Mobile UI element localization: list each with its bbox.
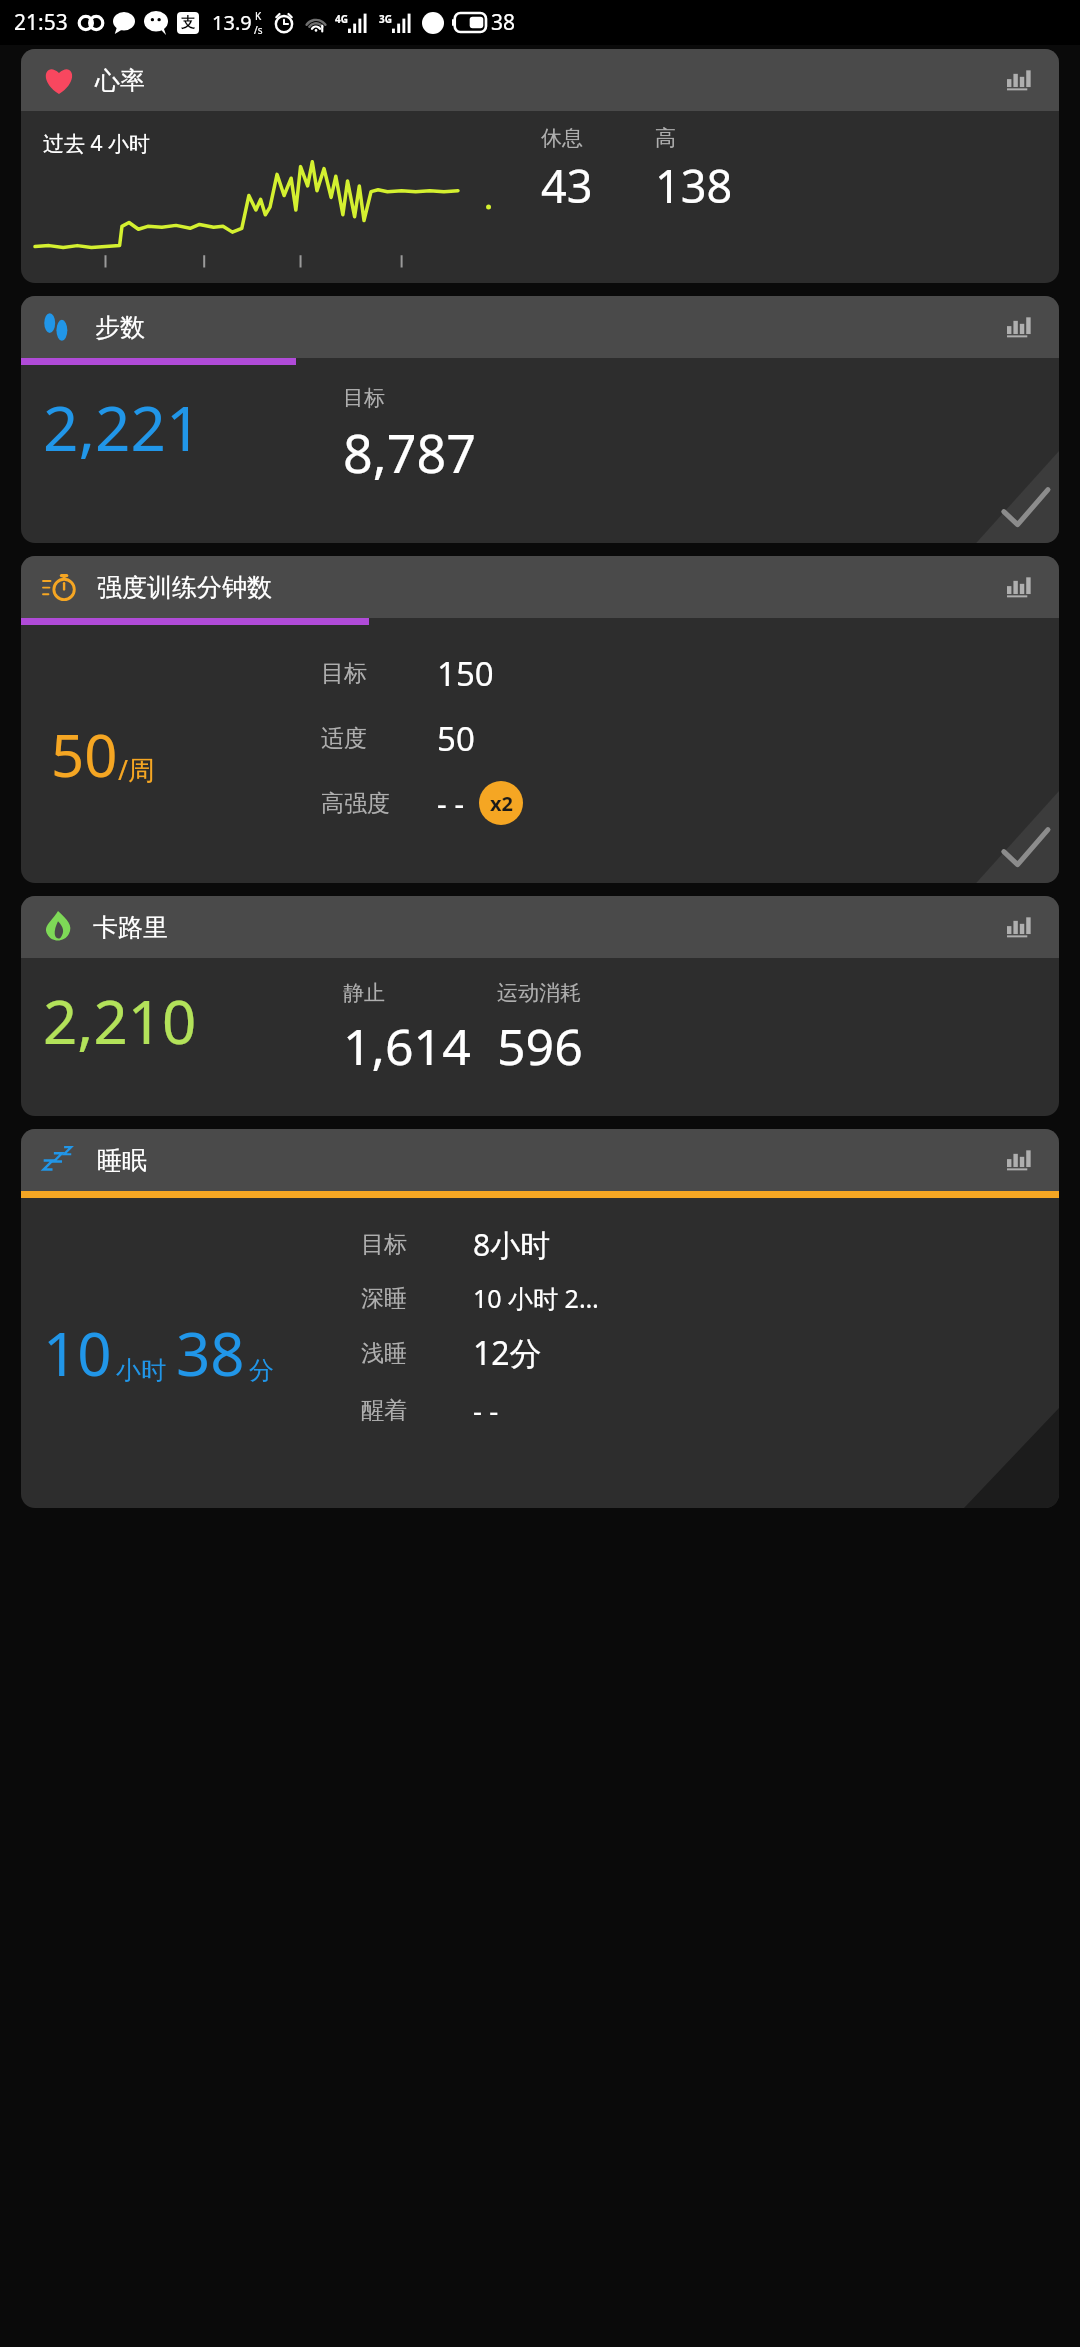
staticText: 强度训练分钟数 bbox=[97, 572, 272, 603]
button[interactable]: Chart bbox=[1003, 570, 1037, 604]
staticText: - - bbox=[437, 783, 465, 824]
staticText: 小时 bbox=[116, 1355, 166, 1386]
staticText: /周 bbox=[118, 751, 156, 788]
button[interactable]: 睡眠 bbox=[21, 1129, 1059, 1508]
button[interactable]: Chart bbox=[1003, 310, 1037, 344]
staticText: 138 bbox=[655, 155, 733, 216]
staticText: 10 bbox=[43, 1312, 112, 1394]
staticText: 目标 bbox=[321, 659, 367, 688]
button[interactable]: Chart bbox=[1003, 63, 1037, 97]
staticText: 1,614 bbox=[343, 1012, 471, 1080]
button[interactable]: Chart bbox=[1003, 1143, 1037, 1177]
button[interactable]: Chart bbox=[1003, 910, 1037, 944]
staticText: 2,210 bbox=[43, 980, 197, 1062]
staticText: 21:53 bbox=[14, 8, 68, 37]
staticText: 高 bbox=[655, 125, 676, 151]
staticText: 浅睡 bbox=[361, 1339, 407, 1368]
staticText: 38 bbox=[176, 1312, 245, 1394]
staticText: 目标 bbox=[361, 1230, 407, 1259]
staticText: 8,787 bbox=[343, 417, 476, 488]
staticText: 8小时 bbox=[473, 1224, 551, 1265]
staticText: 596 bbox=[497, 1012, 583, 1080]
staticText: 高强度 bbox=[321, 789, 390, 818]
staticText: 13.9 bbox=[212, 9, 252, 36]
staticText: 睡眠 bbox=[97, 1145, 147, 1176]
staticText: 心率 bbox=[95, 65, 145, 96]
staticText: - - bbox=[473, 1391, 499, 1429]
staticText: 醒着 bbox=[361, 1396, 407, 1425]
button[interactable]: 卡路里 bbox=[21, 896, 1059, 1116]
button[interactable]: 强度训练分钟数 bbox=[21, 556, 1059, 883]
staticText: 过去 4 小时 bbox=[43, 129, 150, 158]
staticText: 适度 bbox=[321, 724, 367, 753]
staticText: x2 bbox=[490, 790, 513, 817]
staticText: 卡路里 bbox=[93, 912, 168, 943]
button[interactable]: 心率 bbox=[21, 49, 1059, 283]
staticText: 50 bbox=[51, 715, 118, 794]
staticText: 4G bbox=[335, 12, 348, 26]
staticText: 目标 bbox=[343, 385, 385, 411]
staticText: K bbox=[255, 9, 262, 23]
staticText: 12分 bbox=[473, 1331, 542, 1375]
staticText: 2,221 bbox=[43, 385, 202, 469]
staticText: 43 bbox=[541, 155, 593, 216]
staticText: 步数 bbox=[95, 312, 145, 343]
staticText: 10 小时 2… bbox=[473, 1281, 599, 1315]
button[interactable]: 步数 bbox=[21, 296, 1059, 543]
staticText: 38 bbox=[491, 8, 516, 37]
staticText: 深睡 bbox=[361, 1284, 407, 1313]
staticText: /s bbox=[254, 23, 263, 37]
staticText: 50 bbox=[437, 716, 475, 761]
staticText: 分 bbox=[249, 1355, 274, 1386]
staticText: 运动消耗 bbox=[497, 980, 581, 1006]
staticText: 休息 bbox=[541, 125, 583, 151]
staticText: 支 bbox=[181, 14, 195, 32]
staticText: 3G bbox=[379, 12, 392, 26]
staticText: 150 bbox=[437, 651, 494, 696]
staticText: 静止 bbox=[343, 980, 385, 1006]
